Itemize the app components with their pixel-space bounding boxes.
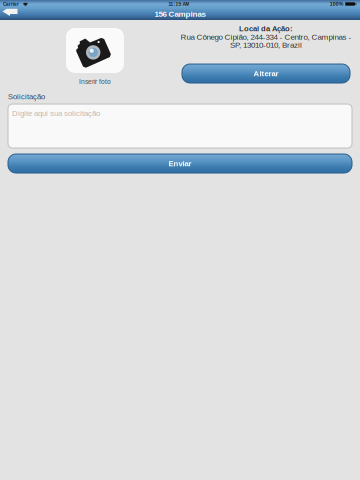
button[interactable]: Back <box>0 8 21 20</box>
staticText: Alterar <box>253 69 278 78</box>
staticText: Enviar <box>168 159 191 168</box>
staticText: Carrier <box>3 1 19 7</box>
staticText: 11:15 AM <box>168 1 189 7</box>
button[interactable]: Alterar <box>182 64 350 83</box>
staticText: Local da Ação: <box>239 24 293 33</box>
staticText: SP, 13010-010, Brazil <box>230 40 302 49</box>
staticText: Solicitação <box>8 92 45 101</box>
staticText: Rua Cônego Cipião, 244-334 - Centro, Cam… <box>180 32 351 41</box>
staticText: 100% <box>330 1 344 7</box>
button[interactable]: Inserir foto <box>66 28 124 73</box>
button[interactable]: Enviar <box>8 154 352 173</box>
staticText: Inserir foto <box>79 78 111 85</box>
staticText: 156 Campinas <box>154 9 205 18</box>
staticText: Digite aqui sua solicitação <box>12 109 100 118</box>
